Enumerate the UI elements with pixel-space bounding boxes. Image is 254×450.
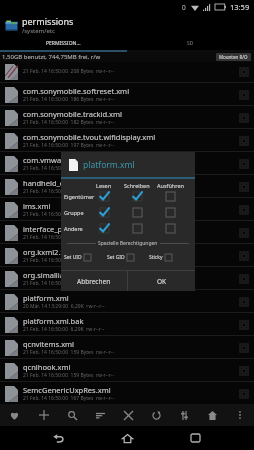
button[interactable]: Permission checkbox: [98, 190, 110, 202]
button[interactable]: Permission checkbox: [131, 222, 143, 234]
staticText: 21 Feb. 14 16:50:00 6,29K rw-r--r--: [23, 326, 105, 333]
button[interactable]: Back: [44, 426, 72, 450]
button[interactable]: Abbrechen: [61, 271, 127, 291]
button[interactable]: Select file: [238, 181, 250, 193]
button[interactable]: Select file: [238, 135, 250, 147]
staticText: 20 Mär. 14 13:29:00 6,29K rw-r--r--: [23, 303, 105, 310]
button[interactable]: Select file: [238, 273, 250, 285]
staticText: 21 Feb. 14 16:50:00 186 Bytes rw-r--r--: [23, 96, 115, 103]
staticText: 1,50GB benutzt, 744,75MB frei, r/w: [2, 53, 101, 61]
button[interactable]: qcnlhook.xml: [0, 359, 254, 382]
button[interactable]: Select file: [238, 342, 250, 354]
staticText: /system/etc: [22, 27, 55, 35]
button[interactable]: Select file: [238, 112, 250, 124]
button[interactable]: platform.xml.bak: [0, 313, 254, 336]
button[interactable]: org.kxml2.xml: [0, 244, 254, 267]
staticText: Set GID: [107, 254, 125, 261]
button[interactable]: com.vmware.view.client.android.xml: [0, 152, 254, 175]
staticText: 21 Feb. 14 16:50:00 197 Bytes rw-r--r--: [23, 142, 115, 149]
button[interactable]: SemcGenericUxpRes.xml: [0, 382, 254, 405]
button[interactable]: Sort: [86, 404, 114, 426]
button[interactable]: PERMISSION...: [0, 36, 127, 50]
button[interactable]: Sticky: [149, 254, 191, 261]
button[interactable]: org.simalliance.openmobileapi.xml: [0, 267, 254, 290]
staticText: Spezielle Berechtigungen: [98, 240, 158, 247]
button[interactable]: Home: [113, 426, 141, 450]
button[interactable]: Permission checkbox: [98, 206, 110, 218]
button[interactable]: Select file: [238, 296, 250, 308]
staticText: ims.xml: [23, 201, 51, 211]
button[interactable]: Mounten R/O: [216, 53, 251, 61]
button[interactable]: Recent apps: [181, 426, 209, 450]
staticText: 21 Feb. 14 16:50:00 193 Bytes rw-r--r--: [23, 165, 115, 172]
staticText: 21 Feb. 14 16:50:00 159 Bytes rw-r--r--: [23, 372, 115, 379]
staticText: Gruppe: [64, 209, 84, 216]
button[interactable]: Set GID: [107, 254, 149, 261]
staticText: handheld_core_hardware.xml: [23, 178, 128, 188]
button[interactable]: Refresh: [142, 404, 170, 426]
staticText: qcnlhook.xml: [23, 362, 71, 372]
staticText: com.sonymobile.tvout.wifidisplay.xml: [23, 132, 156, 142]
staticText: com.sonymobile.softreset.xml: [23, 86, 130, 96]
button[interactable]: Select file: [238, 319, 250, 331]
staticText: SemcGenericUxpRes.xml: [23, 385, 111, 395]
button[interactable]: Select file: [238, 66, 250, 78]
button[interactable]: Permission checkbox: [164, 190, 176, 202]
button[interactable]: Permission checkbox: [131, 206, 143, 218]
staticText: Abbrechen: [77, 277, 111, 286]
button[interactable]: interface_permissions.xml: [0, 221, 254, 244]
button[interactable]: com.sonymobile.softreset.xml: [0, 83, 254, 106]
button[interactable]: Filter: [170, 404, 198, 426]
staticText: 21 Feb. 14 16:50:00 167 Bytes rw-r--r--: [23, 395, 115, 402]
staticText: 21 Feb. 14 16:50:00 208 Bytes rw-r--r--: [23, 68, 115, 75]
staticText: org.simalliance.openmobileapi.xml: [23, 270, 147, 280]
staticText: com.sonymobile.trackid.xml: [23, 109, 122, 119]
button[interactable]: 21 Feb. 14 16:50:00 208 Bytes rw-r--r--: [0, 60, 254, 83]
button[interactable]: Select file: [238, 388, 250, 400]
button[interactable]: Permission checkbox: [98, 222, 110, 234]
button[interactable]: com.sonymobile.trackid.xml: [0, 106, 254, 129]
staticText: 21 Feb. 14 16:50:00 183 Bytes rw-r--r--: [23, 257, 115, 264]
staticText: Mounten R/O: [219, 54, 248, 60]
staticText: platform.xml.bak: [23, 316, 84, 326]
button[interactable]: handheld_core_hardware.xml: [0, 175, 254, 198]
staticText: Set UID: [64, 254, 82, 261]
staticText: 0: [182, 3, 186, 12]
staticText: interface_permissions.xml: [23, 224, 116, 234]
button[interactable]: Select file: [238, 158, 250, 170]
staticText: SD: [187, 40, 194, 47]
staticText: 21 Feb. 14 16:50:00 159 Bytes rw-r--r--: [23, 349, 115, 356]
button[interactable]: Search: [58, 404, 86, 426]
button[interactable]: Select file: [238, 365, 250, 377]
staticText: permissions: [22, 15, 74, 27]
staticText: com.vmware.view.client.android.xml: [23, 155, 152, 165]
button[interactable]: platform.xml: [0, 290, 254, 313]
button[interactable]: com.sonymobile.tvout.wifidisplay.xml: [0, 129, 254, 152]
button[interactable]: Select file: [238, 227, 250, 239]
staticText: org.kxml2.xml: [23, 247, 74, 257]
staticText: OK: [157, 277, 167, 286]
button[interactable]: Home: [198, 404, 226, 426]
staticText: Andere: [64, 225, 83, 232]
button[interactable]: SD: [127, 36, 254, 50]
staticText: PERMISSION...: [46, 40, 81, 47]
button[interactable]: Set UID: [64, 254, 107, 261]
button[interactable]: Select file: [238, 204, 250, 216]
staticText: Lesen: [96, 182, 112, 189]
button[interactable]: Close: [114, 404, 142, 426]
button[interactable]: Select file: [238, 250, 250, 262]
staticText: qcnvitems.xml: [23, 339, 75, 349]
button[interactable]: Permission checkbox: [164, 222, 176, 234]
button[interactable]: qcnvitems.xml: [0, 336, 254, 359]
button[interactable]: Add: [29, 404, 58, 426]
button[interactable]: Permission checkbox: [131, 190, 143, 202]
button[interactable]: Select file: [238, 89, 250, 101]
button[interactable]: More options: [226, 404, 254, 426]
button[interactable]: ims.xml: [0, 198, 254, 221]
staticText: 21 Feb. 14 16:50:00 330 Bytes rw-r--r--: [23, 234, 115, 241]
button[interactable]: OK: [128, 271, 195, 291]
button[interactable]: Permission checkbox: [164, 206, 176, 218]
staticText: Ausführen: [157, 182, 184, 189]
staticText: platform.xml: [83, 159, 135, 171]
button[interactable]: Favorites: [0, 404, 29, 426]
